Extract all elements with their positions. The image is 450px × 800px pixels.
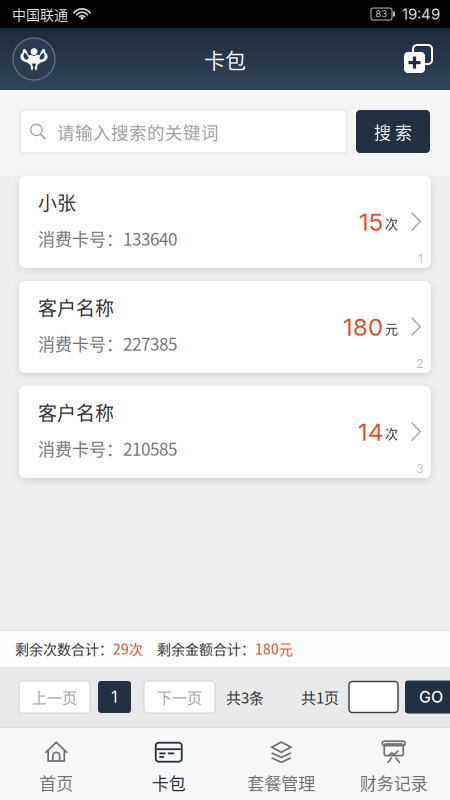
staticText: 小张 — [38, 188, 76, 216]
staticText: 下一页 — [157, 686, 202, 708]
staticText: 剩余次数合计： — [15, 638, 113, 659]
staticText: 83 — [375, 9, 387, 19]
staticText: 19:49 — [402, 5, 440, 23]
staticText: GO — [419, 687, 443, 707]
staticText: 请输入搜索的关键词 — [57, 119, 219, 144]
staticText: 29次 — [113, 638, 143, 659]
button[interactable]: 卡包 — [112, 727, 225, 800]
button[interactable]: Profile — [0, 38, 68, 80]
staticText: 消费卡号：227385 — [38, 331, 177, 355]
button[interactable]: 上一页 — [19, 681, 90, 713]
staticText: 消费卡号：133640 — [38, 226, 177, 250]
staticText: 消费卡号：210585 — [38, 436, 177, 460]
staticText: 首页 — [39, 770, 73, 795]
staticText: 上一页 — [32, 686, 77, 708]
button[interactable]: 财务记录 — [337, 727, 450, 800]
staticText: 15 — [359, 207, 383, 236]
staticText: 卡包 — [204, 44, 246, 74]
button[interactable]: 搜 索 — [356, 110, 430, 153]
staticText: 共3条 — [226, 686, 264, 708]
staticText: 客户名称 — [38, 398, 114, 426]
button[interactable]: 1 — [98, 681, 131, 713]
button[interactable]: 套餐管理 — [225, 727, 337, 800]
staticText: 共1页 — [301, 686, 339, 708]
button[interactable]: Add card — [386, 45, 450, 73]
staticText: 元 — [385, 319, 398, 337]
staticText: 客户名称 — [38, 293, 114, 321]
button[interactable]: 小张 — [19, 176, 431, 268]
button[interactable]: GO — [405, 680, 450, 713]
staticText: 卡包 — [152, 770, 186, 795]
staticText: 180 — [343, 312, 383, 341]
button[interactable]: 首页 — [0, 727, 112, 800]
staticText: 中国联通 — [12, 4, 68, 24]
staticText: 剩余金额合计： — [157, 638, 255, 659]
staticText: 财务记录 — [360, 770, 428, 795]
staticText: 1 — [418, 251, 423, 266]
staticText: 2 — [416, 356, 423, 371]
staticText: 1 — [111, 687, 118, 707]
staticText: 14 — [358, 417, 383, 446]
staticText: 次 — [385, 424, 398, 442]
staticText: 180元 — [255, 638, 293, 659]
button[interactable]: 下一页 — [144, 681, 215, 713]
staticText: 套餐管理 — [247, 770, 315, 795]
button[interactable]: 客户名称 — [19, 281, 431, 373]
staticText: 次 — [385, 214, 398, 232]
button[interactable]: 客户名称 — [19, 386, 431, 478]
staticText: 3 — [416, 461, 423, 476]
staticText: 搜 索 — [374, 119, 412, 144]
